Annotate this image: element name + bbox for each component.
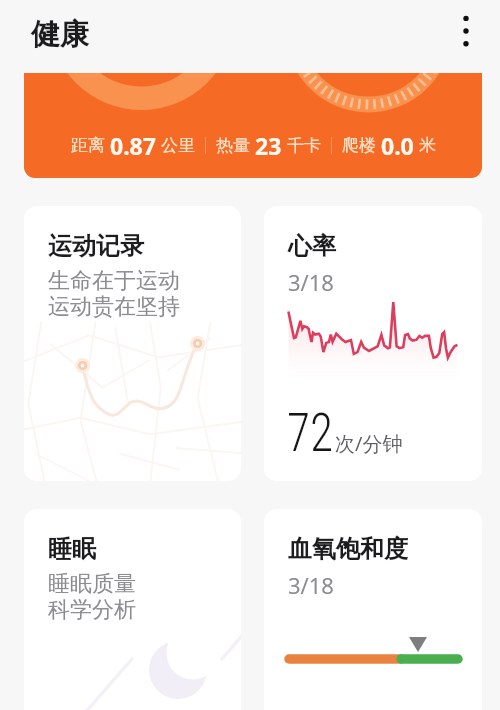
button[interactable]: 运动记录 — [24, 206, 241, 481]
staticText: 血氧饱和度 — [288, 534, 408, 564]
staticText: 距离 — [71, 135, 105, 156]
staticText: 睡眠 — [48, 534, 96, 564]
staticText: 睡眠质量 科学分析 — [48, 570, 136, 623]
staticText: 运动记录 — [48, 231, 144, 261]
staticText: 公里 — [161, 135, 195, 156]
button[interactable]: 睡眠 — [24, 509, 241, 710]
staticText: 米 — [419, 135, 436, 156]
button[interactable]: More options — [444, 9, 488, 53]
staticText: 3/18 — [288, 267, 334, 297]
staticText: 生命在于运动 运动贵在坚持 — [48, 267, 180, 320]
staticText: 23 — [255, 130, 282, 161]
staticText: 72 — [287, 401, 334, 464]
staticText: 千卡 — [287, 135, 321, 156]
staticText: 爬楼 — [342, 135, 376, 156]
staticText: 次/分钟 — [335, 430, 403, 457]
staticText: 心率 — [288, 231, 336, 261]
button[interactable]: 距离 — [24, 73, 482, 178]
staticText: 0.87 — [110, 130, 156, 161]
staticText: 0.0 — [381, 130, 414, 161]
staticText: 热量 — [216, 135, 250, 156]
button[interactable]: 心率 — [264, 206, 482, 481]
staticText: 健康 — [31, 16, 89, 53]
staticText: 3/18 — [288, 570, 334, 600]
button[interactable]: 血氧饱和度 — [264, 509, 482, 710]
